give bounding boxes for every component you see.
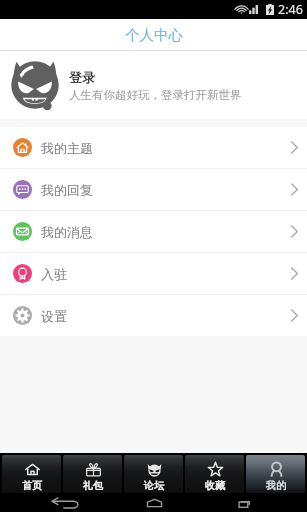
staticText: 入驻 (41, 266, 67, 282)
button[interactable]: 礼包 (63, 455, 122, 493)
staticText: 收藏 (205, 479, 225, 492)
button[interactable]: Home (103, 494, 205, 512)
button[interactable]: Recent apps (205, 494, 307, 512)
staticText: 我的 (266, 479, 286, 492)
button[interactable]: 我的 (246, 455, 305, 493)
staticText: 个人中心 (125, 26, 183, 44)
button[interactable]: 我的消息 (0, 211, 307, 252)
button[interactable]: 设置 (0, 295, 307, 336)
staticText: 人生有你超好玩，登录打开新世界 (69, 88, 242, 102)
button[interactable]: 入驻 (0, 253, 307, 294)
staticText: 登录 (69, 69, 95, 85)
staticText: 论坛 (144, 479, 164, 492)
button[interactable]: 登录 (0, 51, 307, 119)
button[interactable]: 论坛 (124, 455, 183, 493)
staticText: 礼包 (83, 479, 103, 492)
staticText: 首页 (22, 479, 42, 492)
button[interactable]: 我的主题 (0, 127, 307, 168)
button[interactable]: 首页 (2, 455, 61, 493)
staticText: 我的主题 (41, 140, 93, 156)
staticText: 我的回复 (41, 182, 93, 198)
button[interactable]: 收藏 (185, 455, 244, 493)
staticText: 我的消息 (41, 224, 93, 240)
button[interactable]: 我的回复 (0, 169, 307, 210)
staticText: 设置 (41, 308, 67, 324)
staticText: 2:46 (278, 1, 303, 18)
button[interactable]: Back (0, 494, 103, 512)
